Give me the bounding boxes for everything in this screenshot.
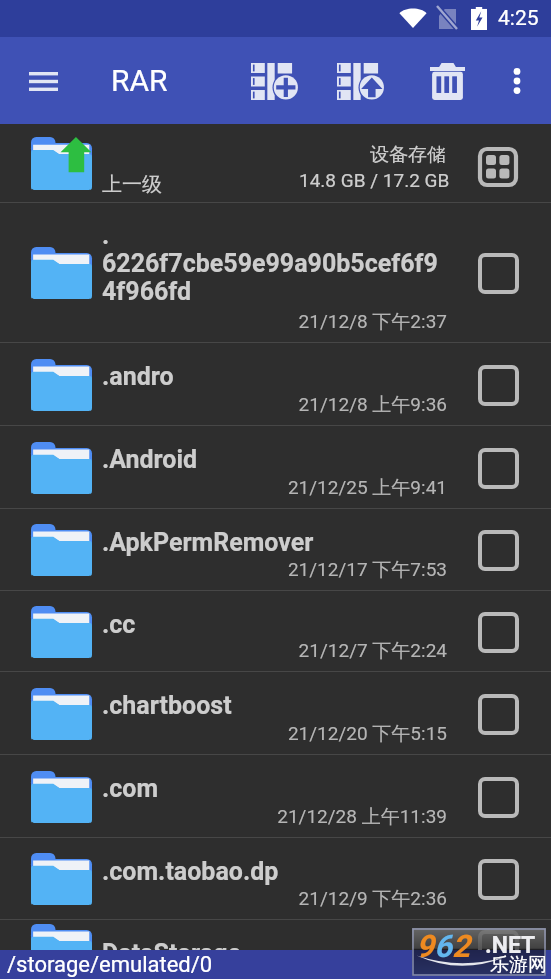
button[interactable]: More options xyxy=(493,51,541,111)
button[interactable]: Select item xyxy=(477,693,519,735)
button[interactable]: .cc xyxy=(0,591,551,672)
staticText: 21/12/20 下午5:15 xyxy=(0,722,447,746)
button[interactable]: Select item xyxy=(477,929,519,971)
staticText: .ApkPermRemover xyxy=(102,528,314,557)
staticText: 21/12/7 下午2:24 xyxy=(0,639,447,663)
button[interactable]: Delete xyxy=(418,51,476,111)
staticText: /storage/emulated/0 xyxy=(7,952,213,978)
button[interactable]: Select item xyxy=(477,529,519,571)
staticText: .com.taobao.dp xyxy=(102,857,279,886)
button[interactable]: Open navigation drawer xyxy=(19,57,67,105)
staticText: 14.8 GB / 17.2 GB xyxy=(299,169,450,191)
button[interactable]: Select item xyxy=(477,252,519,294)
staticText: 21/12/25 上午9:41 xyxy=(0,476,447,500)
button[interactable]: Extract archive xyxy=(329,51,391,111)
staticText: .NET xyxy=(485,932,536,959)
staticText: .Android xyxy=(102,445,198,474)
staticText: 21/12/28 上午11:39 xyxy=(0,805,447,829)
staticText: 21/12/9 下午2:36 xyxy=(0,887,447,911)
button[interactable]: Add to archive xyxy=(243,51,305,111)
staticText: 21/12/8 上午9:36 xyxy=(0,393,447,417)
staticText: 设备存储 xyxy=(370,143,446,167)
button[interactable]: .ApkPermRemover xyxy=(0,509,551,591)
staticText: 6 xyxy=(434,928,452,964)
button[interactable]: Select item xyxy=(477,364,519,406)
staticText: .com xyxy=(102,774,159,803)
staticText: RAR xyxy=(111,63,168,98)
button[interactable]: Select item xyxy=(477,858,519,900)
button[interactable]: Select item xyxy=(477,611,519,653)
button[interactable]: .Android xyxy=(0,426,551,509)
staticText: 上一级 xyxy=(102,172,162,197)
button[interactable]: 上一级 xyxy=(0,124,551,203)
staticText: .chartboost xyxy=(102,691,232,720)
staticText: 4:25 xyxy=(498,6,539,31)
button[interactable]: .com xyxy=(0,755,551,838)
button[interactable]: Switch to grid view xyxy=(474,143,521,190)
button[interactable]: DataStorage xyxy=(0,920,551,979)
button[interactable]: .com.taobao.dp xyxy=(0,838,551,920)
button[interactable]: .andro xyxy=(0,343,551,426)
staticText: 21/12/17 下午7:53 xyxy=(0,558,447,582)
staticText: 21/12/8 下午2:37 xyxy=(0,310,447,334)
staticText: .cc xyxy=(102,610,136,639)
staticText: .andro xyxy=(102,362,174,391)
button[interactable]: . 6226f7cbe59e99a90b5cef6f9 4f966fd xyxy=(0,203,551,343)
staticText: 2 xyxy=(452,928,470,964)
staticText: . 6226f7cbe59e99a90b5cef6f9 4f966fd xyxy=(102,221,438,307)
button[interactable]: /storage/emulated/0 xyxy=(0,950,551,979)
button[interactable]: Select item xyxy=(477,776,519,818)
button[interactable]: Select item xyxy=(477,447,519,489)
staticText: 乐游网 xyxy=(490,953,547,977)
staticText: 9 xyxy=(416,928,434,964)
button[interactable]: .chartboost xyxy=(0,672,551,755)
staticText: DataStorage xyxy=(102,939,242,968)
